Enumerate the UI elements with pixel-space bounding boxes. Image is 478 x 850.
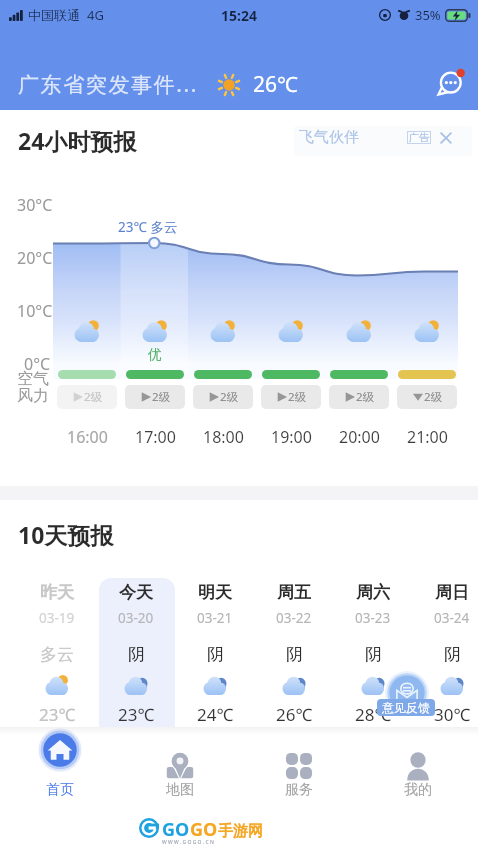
staticText: 意见反馈 (382, 700, 430, 715)
staticText: 30°C (17, 194, 53, 216)
staticText: 阴 (365, 644, 382, 665)
staticText: 周五 (277, 582, 311, 603)
staticText: 20:00 (339, 426, 380, 448)
staticText: 风力 (17, 386, 49, 406)
staticText: 23℃ (39, 703, 76, 726)
staticText: 空气 (17, 369, 49, 389)
staticText: 23℃ 多云 (118, 218, 178, 236)
button[interactable]: 周日 (413, 578, 478, 730)
staticText: 30℃ (434, 703, 471, 726)
staticText: 03-23 (355, 609, 391, 627)
staticText: 中国联通 (28, 7, 80, 23)
staticText: 23℃ (118, 703, 155, 726)
staticText: 手游网 (218, 822, 263, 841)
staticText: 24℃ (197, 703, 234, 726)
staticText: GO (162, 817, 190, 842)
button[interactable]: Close ad (437, 129, 455, 147)
staticText: 我的 (404, 781, 432, 799)
staticText: W W W . G O G O . C N (162, 839, 214, 846)
staticText: 2级 (220, 389, 239, 405)
staticText: 21:00 (407, 426, 448, 448)
staticText: 16:00 (67, 426, 108, 448)
staticText: 广告 (409, 131, 429, 144)
staticText: 35% (415, 6, 441, 24)
staticText: 2级 (356, 389, 375, 405)
button[interactable]: 意见反馈 (377, 699, 435, 716)
staticText: 2级 (288, 389, 307, 405)
staticText: GO (190, 817, 218, 842)
staticText: 15:24 (221, 6, 257, 25)
staticText: 18:00 (203, 426, 244, 448)
staticText: 2级 (152, 389, 171, 405)
button[interactable]: 服务 (266, 727, 332, 802)
staticText: 10天预报 (18, 519, 114, 550)
staticText: 阴 (286, 644, 303, 665)
staticText: 26℃ (276, 703, 313, 726)
button[interactable]: Messages (437, 67, 467, 97)
staticText: 0°C (24, 353, 51, 375)
button[interactable]: 2级 (397, 385, 457, 409)
button[interactable]: 首页 (27, 727, 93, 802)
button[interactable]: Feedback (385, 671, 429, 715)
staticText: 17:00 (135, 426, 176, 448)
button[interactable]: 明天 (176, 578, 254, 730)
button[interactable]: 2级 (57, 385, 117, 409)
staticText: 26℃ (253, 70, 298, 99)
staticText: 03-22 (276, 609, 312, 627)
staticText: 03-19 (39, 609, 75, 627)
button[interactable]: 今天 (97, 578, 175, 730)
staticText: 4G (87, 6, 104, 24)
staticText: 今天 (119, 582, 153, 603)
staticText: 03-24 (434, 609, 470, 627)
staticText: 阴 (207, 644, 224, 665)
staticText: 多云 (40, 644, 74, 665)
staticText: 2级 (84, 389, 103, 405)
button[interactable]: 2级 (193, 385, 253, 409)
button[interactable]: 2级 (261, 385, 321, 409)
staticText: 10°C (17, 300, 53, 322)
staticText: 2级 (424, 389, 443, 405)
staticText: 03-20 (118, 609, 154, 627)
staticText: 优 (148, 346, 162, 363)
staticText: 飞气伙伴 (299, 128, 359, 147)
staticText: 20°C (17, 247, 53, 269)
staticText: 地图 (166, 781, 194, 799)
staticText: 昨天 (40, 582, 74, 603)
staticText: 阴 (128, 644, 145, 665)
staticText: 03-21 (197, 609, 233, 627)
button[interactable]: 2级 (329, 385, 389, 409)
button[interactable]: 周五 (255, 578, 333, 730)
staticText: 服务 (285, 781, 313, 799)
button[interactable]: 我的 (385, 727, 451, 802)
staticText: 明天 (198, 582, 232, 603)
button[interactable]: 周六 (334, 578, 412, 730)
button[interactable]: 地图 (147, 727, 213, 802)
staticText: 24小时预报 (18, 125, 137, 156)
staticText: 阴 (444, 644, 461, 665)
staticText: 周日 (435, 582, 469, 603)
button[interactable]: 2级 (125, 385, 185, 409)
staticText: 首页 (46, 781, 74, 799)
staticText: 19:00 (271, 426, 312, 448)
staticText: 28℃ (355, 703, 392, 726)
staticText: 周六 (356, 582, 390, 603)
staticText: 广东省突发事件... (18, 70, 198, 99)
button[interactable]: 昨天 (18, 578, 96, 730)
